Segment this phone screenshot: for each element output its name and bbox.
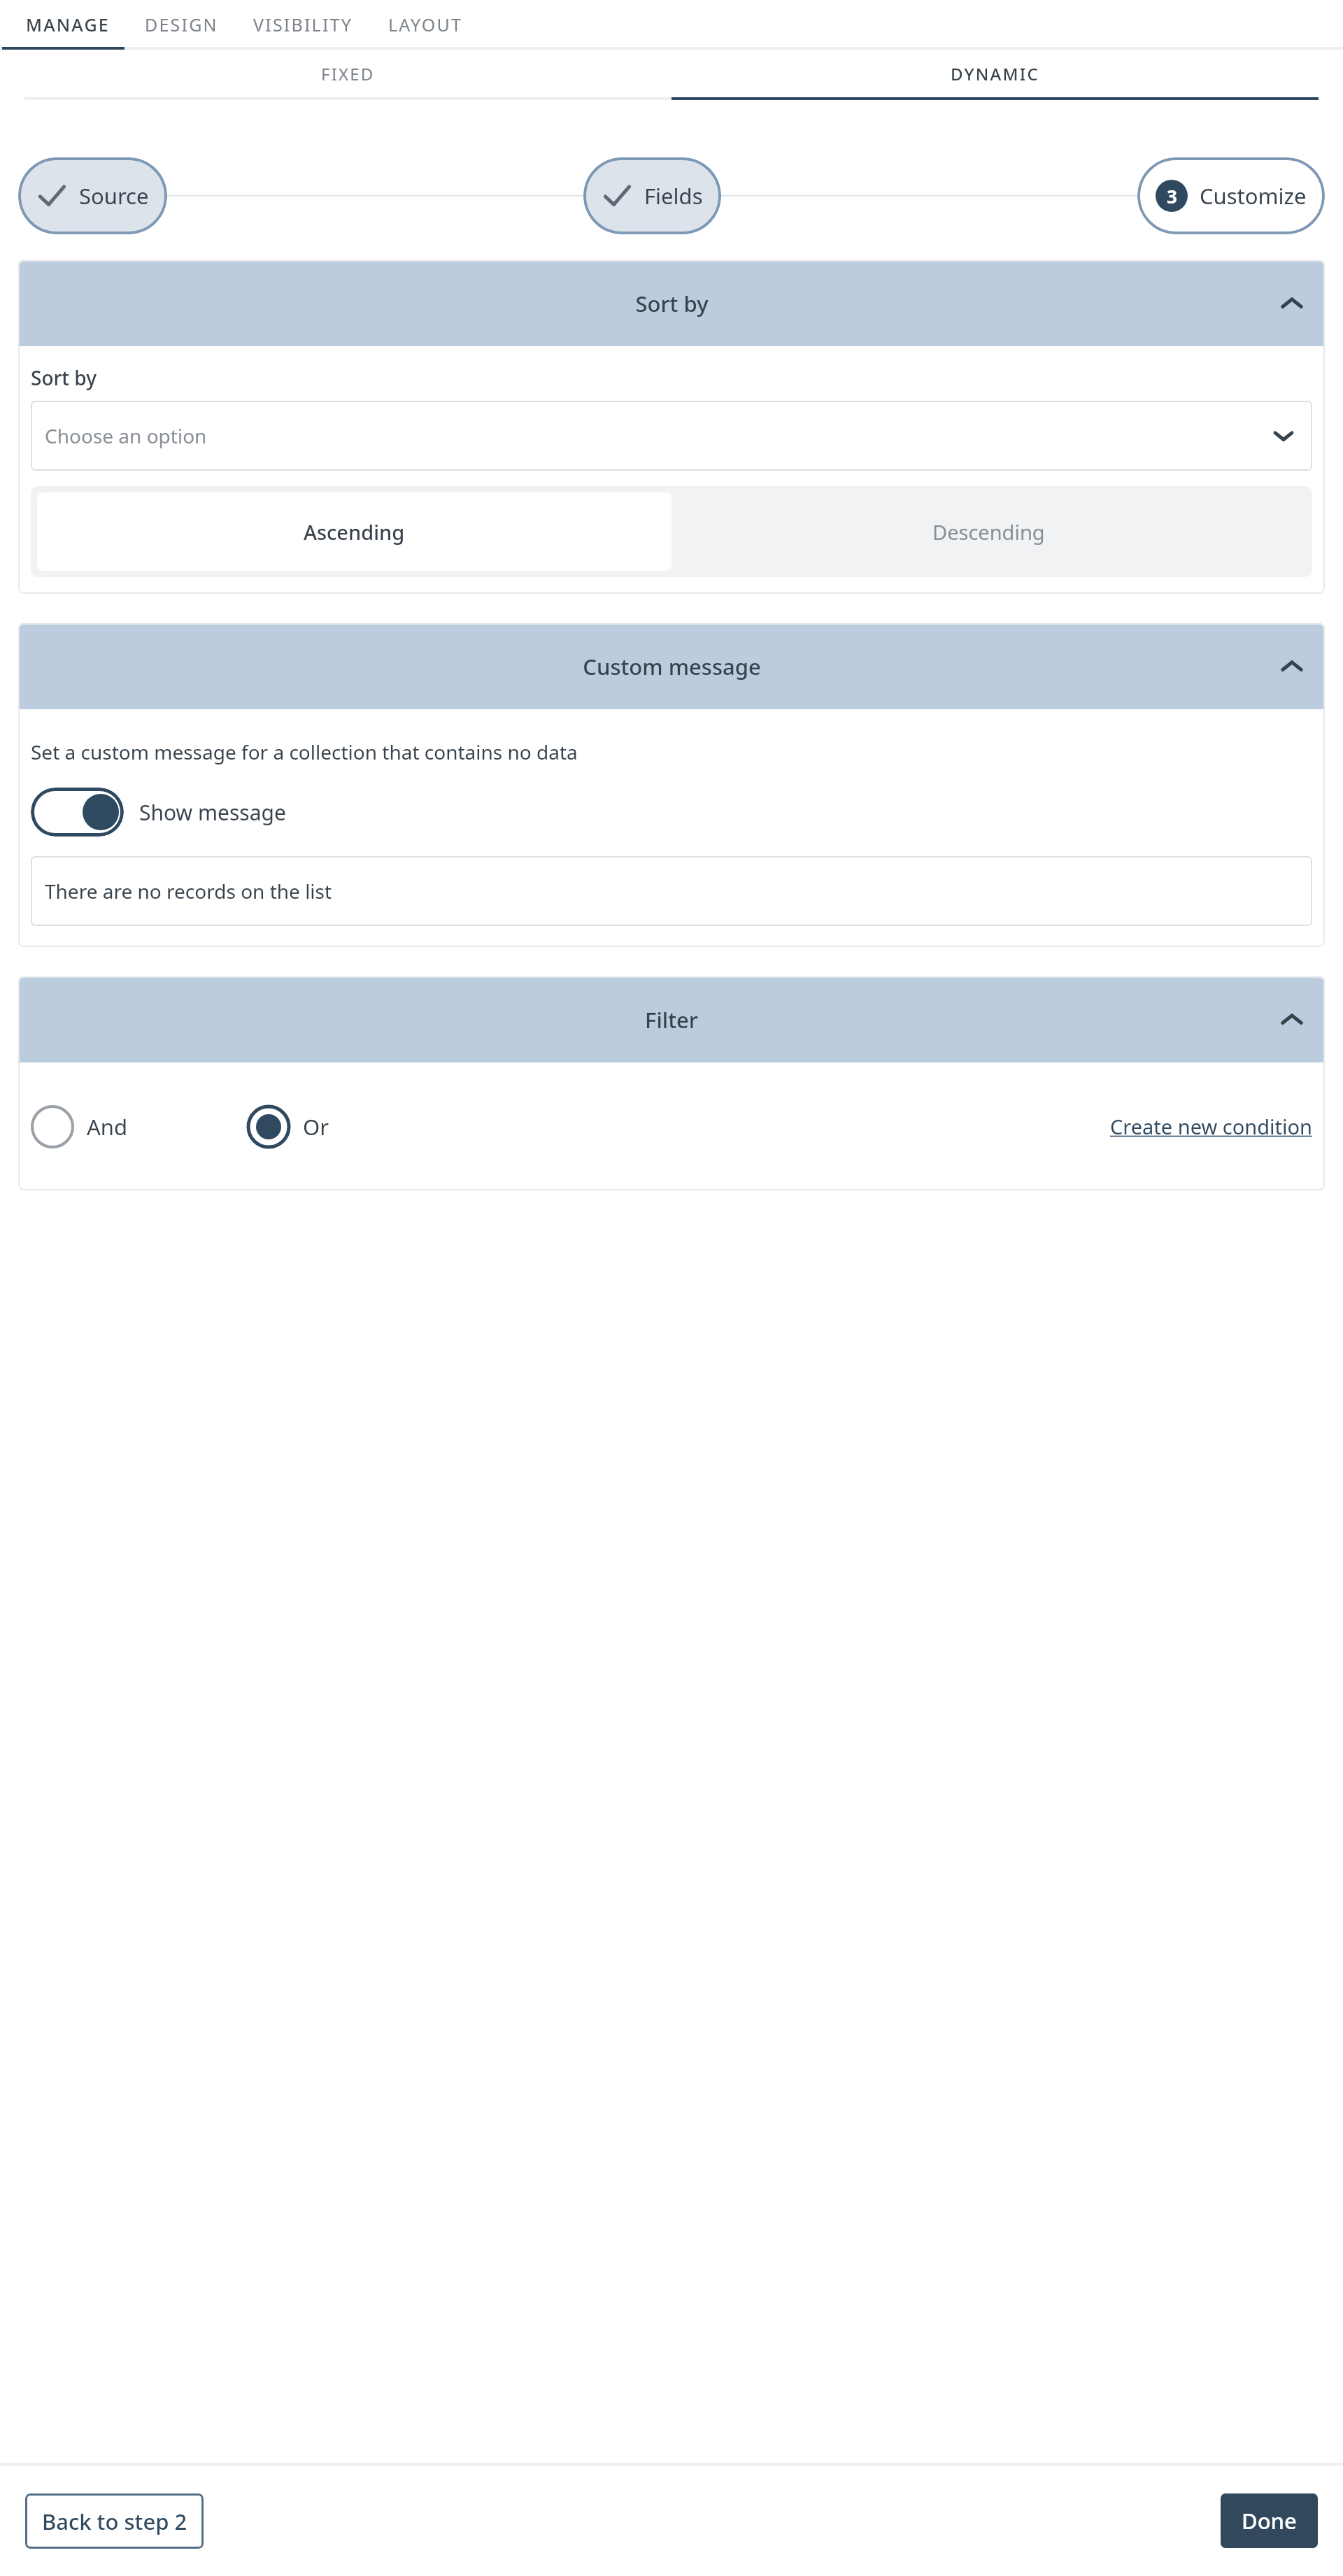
staticText: Source — [79, 181, 149, 211]
staticText: Or — [303, 1112, 329, 1141]
button[interactable]: Show message — [31, 788, 286, 837]
button[interactable]: Fields — [583, 157, 721, 234]
button[interactable]: Back to step 2 — [25, 2493, 204, 2549]
button[interactable]: VISIBILITY — [236, 0, 371, 47]
staticText: Filter — [645, 1005, 698, 1034]
button[interactable]: Create new condition — [1110, 1113, 1312, 1140]
button[interactable]: Or — [247, 1105, 329, 1148]
other: Collapse Filter — [1279, 1006, 1305, 1033]
button[interactable]: And — [31, 1105, 128, 1148]
button[interactable]: DYNAMIC — [671, 50, 1319, 97]
button[interactable]: There are no records on the list — [31, 856, 1312, 926]
staticText: Fields — [644, 181, 703, 211]
staticText: Ascending — [304, 518, 405, 546]
other: Collapse Custom message — [1279, 653, 1305, 680]
button[interactable]: Filter — [18, 976, 1325, 1062]
button[interactable]: 3 — [1137, 157, 1325, 234]
button[interactable]: LAYOUT — [371, 0, 481, 47]
button[interactable]: Choose an option — [31, 401, 1312, 471]
button[interactable]: Ascending — [37, 492, 671, 571]
staticText: Show message — [139, 798, 286, 827]
staticText: Sort by — [31, 364, 97, 391]
staticText: Descending — [932, 518, 1045, 546]
button[interactable]: Descending — [671, 492, 1306, 571]
button[interactable]: Source — [18, 157, 167, 234]
staticText: Custom message — [583, 652, 761, 681]
button[interactable]: FIXED — [24, 50, 671, 97]
staticText: 3 — [1167, 184, 1177, 208]
button[interactable]: Custom message — [18, 623, 1325, 709]
staticText: MANAGE — [26, 13, 110, 34]
staticText: Choose an option — [45, 422, 207, 449]
staticText: And — [87, 1112, 128, 1141]
staticText: DYNAMIC — [951, 62, 1039, 85]
staticText: DESIGN — [145, 13, 218, 34]
staticText: Done — [1242, 2506, 1297, 2535]
staticText: Customize — [1200, 181, 1307, 211]
staticText: Set a custom message for a collection th… — [31, 739, 578, 765]
button[interactable]: DESIGN — [127, 0, 236, 47]
button[interactable]: MANAGE — [8, 0, 127, 47]
other: Collapse Sort by — [1279, 290, 1305, 317]
staticText: Back to step 2 — [42, 2507, 187, 2536]
button[interactable]: Done — [1221, 2493, 1318, 2548]
staticText: VISIBILITY — [253, 13, 353, 34]
staticText: There are no records on the list — [45, 878, 332, 904]
button[interactable]: Sort by — [18, 260, 1325, 346]
staticText: LAYOUT — [388, 13, 463, 34]
staticText: Sort by — [635, 289, 709, 318]
staticText: FIXED — [321, 62, 375, 85]
staticText: Create new condition — [1110, 1113, 1312, 1140]
